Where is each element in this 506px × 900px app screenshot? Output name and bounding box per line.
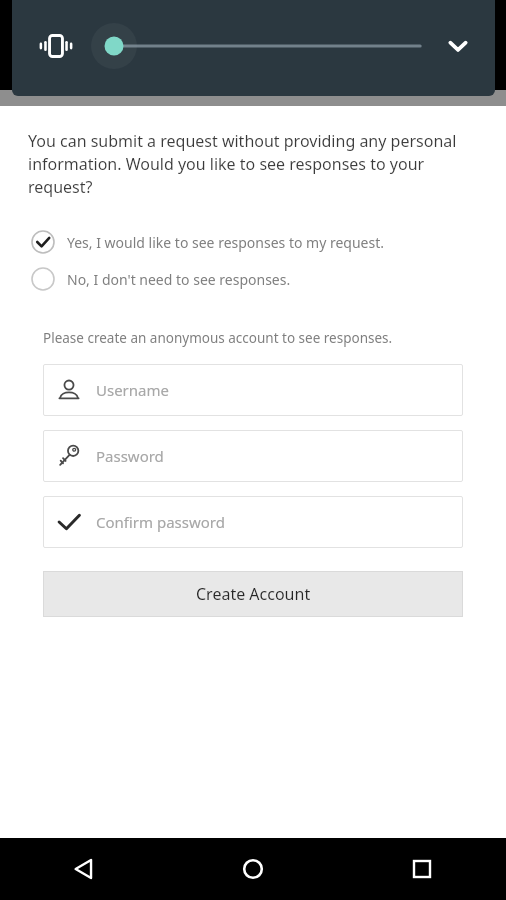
staticText: You can submit a request without providi…	[28, 130, 466, 198]
button[interactable]: Username	[43, 364, 463, 416]
staticText: Yes, I would like to see responses to my…	[67, 233, 385, 252]
staticText: Confirm password	[96, 512, 225, 532]
staticText: Create Account	[196, 583, 311, 605]
staticText: Username	[96, 380, 169, 400]
button[interactable]: Password	[43, 430, 463, 482]
button[interactable]: Home	[168, 838, 337, 900]
button[interactable]: Expand volume controls	[436, 24, 480, 68]
button[interactable]: Volume slider	[80, 22, 440, 70]
button[interactable]: Back	[0, 838, 168, 900]
button[interactable]: No, I don't need to see responses.	[0, 261, 506, 297]
button[interactable]: Vibrate mode	[34, 24, 78, 68]
button[interactable]: Recent apps	[337, 838, 506, 900]
staticText: No, I don't need to see responses.	[67, 270, 291, 289]
button[interactable]: Confirm password	[43, 496, 463, 548]
staticText: Password	[96, 446, 164, 466]
button[interactable]: Create Account	[43, 571, 463, 617]
staticText: Please create an anonymous account to se…	[43, 329, 393, 347]
button[interactable]: Yes, I would like to see responses to my…	[0, 224, 506, 260]
